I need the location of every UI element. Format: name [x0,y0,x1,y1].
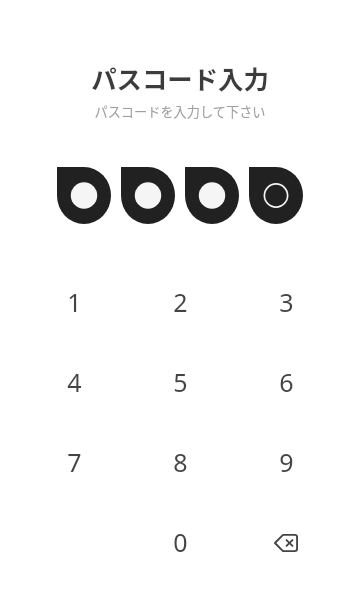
button[interactable]: 0 [127,502,233,582]
staticText: パスコード入力 [91,60,269,97]
staticText: 2 [173,285,188,319]
staticText: 9 [279,445,294,479]
button[interactable]: 3 [233,262,339,342]
button[interactable]: 5 [127,342,233,422]
button[interactable]: 1 [21,262,127,342]
staticText: 8 [173,445,188,479]
staticText: 7 [67,445,82,479]
button[interactable]: 4 [21,342,127,422]
staticText: 6 [279,365,294,399]
button[interactable]: 9 [233,422,339,502]
staticText: 5 [173,365,188,399]
button[interactable]: 8 [127,422,233,502]
button[interactable]: Backspace [233,502,339,582]
staticText: 3 [279,285,294,319]
button[interactable]: 7 [21,422,127,502]
staticText: 1 [67,285,82,319]
button[interactable]: 6 [233,342,339,422]
button[interactable]: 2 [127,262,233,342]
staticText: パスコードを入力して下さい [94,102,266,121]
staticText: 0 [173,525,188,559]
staticText: 4 [67,365,82,399]
